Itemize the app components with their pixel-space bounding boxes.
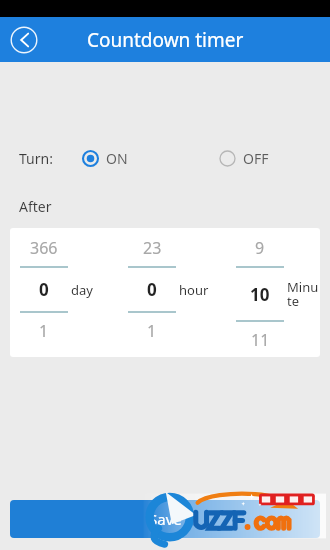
button[interactable]: 23 (128, 228, 225, 357)
staticText: 1 (147, 320, 157, 342)
staticText: After (19, 197, 52, 216)
staticText: Minute (287, 278, 320, 310)
button[interactable]: 366 (20, 228, 117, 357)
staticText: 0 (39, 278, 49, 301)
staticText: 0 (147, 278, 157, 301)
staticText: Turn: (19, 149, 53, 168)
staticText: day (71, 281, 93, 299)
staticText: hour (179, 281, 209, 299)
staticText: 10 (250, 283, 270, 306)
staticText: 23 (143, 237, 162, 259)
staticText: ON (106, 149, 128, 168)
button[interactable]: 9 (236, 228, 320, 357)
staticText: Save (149, 509, 182, 529)
staticText: 366 (30, 237, 58, 259)
button[interactable]: OFF (217, 146, 271, 171)
button[interactable]: ON (80, 146, 130, 171)
staticText: 9 (255, 237, 265, 259)
button[interactable]: Back (7, 23, 41, 57)
staticText: 1 (39, 320, 49, 342)
staticText: OFF (243, 149, 269, 168)
staticText: 11 (251, 329, 270, 351)
staticText: Countdown timer (87, 27, 244, 53)
button[interactable]: Save (10, 500, 320, 538)
